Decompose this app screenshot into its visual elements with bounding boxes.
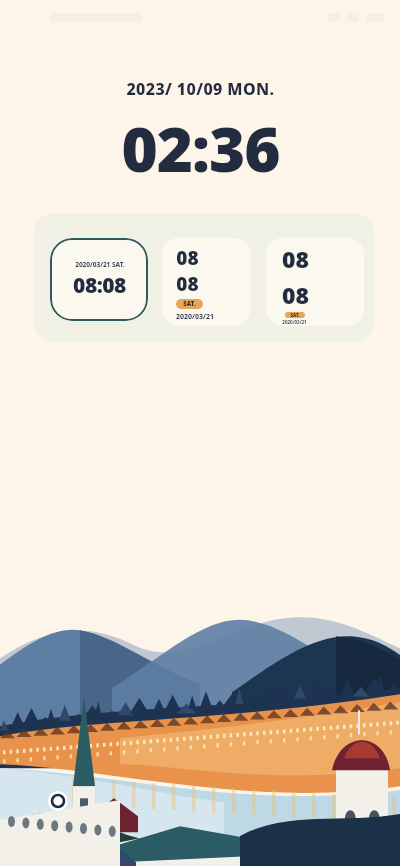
staticText: SAT. [183, 300, 196, 308]
staticText: 2020/03/21 [176, 312, 214, 322]
button[interactable]: 08 [162, 238, 250, 326]
staticText: 08 [282, 279, 309, 310]
staticText: 08:08 [73, 271, 126, 300]
staticText: 08 [176, 271, 199, 297]
staticText: SAT. [290, 312, 300, 318]
staticText: 08 [282, 243, 309, 274]
button[interactable]: 08 [266, 238, 364, 326]
button[interactable]: Camera [48, 791, 68, 811]
staticText: 2020/03/21 SAT. [75, 260, 125, 269]
staticText: 08 [176, 245, 199, 271]
staticText: 2020/03/21 [282, 319, 307, 325]
staticText: 2023/ 10/09 MON. [126, 78, 275, 100]
button[interactable]: 2020/03/21 SAT. [50, 238, 148, 321]
staticText: 02:36 [121, 106, 280, 190]
